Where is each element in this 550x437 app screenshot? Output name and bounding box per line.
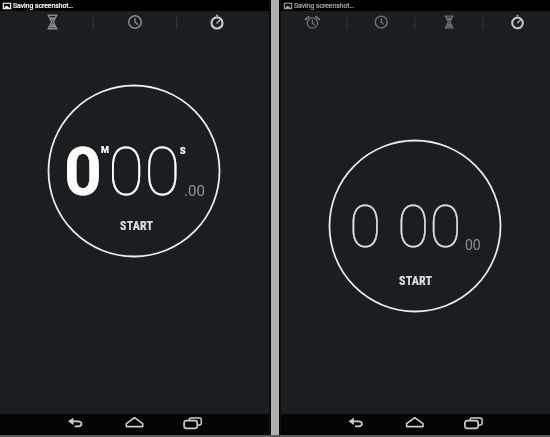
staticText: START	[399, 274, 433, 288]
staticText: .00	[184, 182, 205, 200]
button[interactable]: Timer	[0, 11, 89, 40]
staticText: 00	[108, 134, 181, 211]
button[interactable]: Clock	[349, 11, 416, 40]
staticText: 00	[397, 192, 462, 261]
button[interactable]: 0	[281, 40, 550, 414]
staticText: M	[101, 145, 109, 156]
button[interactable]: Stopwatch	[179, 11, 269, 40]
button[interactable]: Back	[0, 414, 89, 437]
button[interactable]: Alarm	[281, 11, 349, 40]
button[interactable]: 0	[0, 40, 269, 414]
staticText: Saving screenshot…	[294, 2, 355, 10]
staticText: 0	[64, 134, 102, 211]
button[interactable]: Back	[281, 414, 370, 437]
button[interactable]: Clock	[89, 11, 179, 40]
staticText: S	[180, 146, 186, 157]
button[interactable]: Home	[89, 414, 179, 437]
staticText: 0	[349, 192, 382, 261]
button[interactable]: Stopwatch	[483, 11, 550, 40]
button[interactable]: Home	[370, 414, 460, 437]
staticText: START	[120, 219, 154, 233]
staticText: 00	[465, 237, 481, 253]
button[interactable]: Recent apps	[460, 414, 550, 437]
button[interactable]: Recent apps	[179, 414, 269, 437]
button[interactable]: Timer	[416, 11, 483, 40]
staticText: Saving screenshot…	[13, 2, 74, 10]
